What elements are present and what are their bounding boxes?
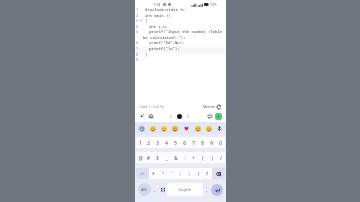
- button[interactable]: /: [216, 152, 225, 163]
- staticText: #: [147, 155, 150, 161]
- button[interactable]: ?: [203, 168, 212, 179]
- staticText: #include<stdio.h>: [145, 7, 186, 12]
- staticText: .: [206, 187, 208, 193]
- staticText: }: [145, 52, 148, 57]
- button[interactable]: Emoji: [205, 125, 212, 132]
- staticText: !: [198, 171, 200, 177]
- button[interactable]: Emoji: [194, 125, 201, 132]
- staticText: -: [184, 155, 186, 161]
- staticText: be calculated):");: [143, 35, 186, 40]
- staticText: 0: [219, 140, 222, 146]
- button[interactable]: Rotate preview: [216, 104, 221, 109]
- staticText: 2: [136, 13, 139, 18]
- button[interactable]: Emoji: [171, 125, 178, 132]
- staticText: 9: [136, 57, 139, 62]
- button[interactable]: (: [198, 152, 207, 163]
- button[interactable]: ': [167, 168, 176, 179]
- staticText: =\<: [140, 172, 145, 176]
- button[interactable]: $: [153, 152, 162, 163]
- button[interactable]: Emoji: [160, 125, 167, 132]
- button[interactable]: ;: [185, 168, 194, 179]
- staticText: 1:14: [153, 2, 161, 7]
- button[interactable]: .: [203, 183, 211, 196]
- button[interactable]: Voice input: [216, 125, 223, 132]
- staticText: int main (): [145, 13, 171, 18]
- staticText: 3: [156, 140, 159, 146]
- staticText: :: [180, 171, 182, 177]
- staticText: ;: [189, 171, 191, 177]
- staticText: int j,n;: [149, 24, 168, 29]
- button[interactable]: English: [167, 183, 203, 196]
- staticText: 1: [136, 7, 139, 12]
- button[interactable]: Previous: [168, 113, 174, 119]
- button[interactable]: Cursor position: [177, 114, 182, 119]
- staticText: @: [138, 155, 143, 161]
- button[interactable]: Backspace: [212, 168, 225, 179]
- staticText: scanf("%d",&n);: [149, 40, 185, 45]
- button[interactable]: ABC: [138, 183, 151, 196]
- staticText: printf("Input the number (Table to: [149, 29, 226, 34]
- staticText: English: [179, 187, 192, 192]
- button[interactable]: 5: [171, 137, 180, 148]
- staticText: ": [162, 171, 164, 177]
- staticText: +: [192, 155, 195, 161]
- staticText: (: [202, 155, 204, 161]
- button[interactable]: Comments: [206, 113, 213, 120]
- staticText: 6: [136, 40, 139, 45]
- button[interactable]: Recent emoji: [138, 125, 145, 132]
- staticText: 6: [183, 140, 186, 146]
- staticText: *: [152, 171, 155, 177]
- staticText: 8: [136, 52, 139, 57]
- staticText: $: [156, 155, 159, 161]
- staticText: 2: [147, 140, 150, 146]
- button[interactable]: ): [207, 152, 216, 163]
- button[interactable]: ,: [151, 183, 159, 196]
- staticText: 7: [192, 140, 195, 146]
- staticText: _: [166, 155, 168, 161]
- button[interactable]: Emoji: [149, 125, 156, 132]
- button[interactable]: +: [189, 152, 198, 163]
- button[interactable]: Enter: [211, 184, 223, 196]
- button[interactable]: Heart emoji: [183, 125, 190, 132]
- staticText: 9: [210, 140, 213, 146]
- button[interactable]: Switch keyboard: [159, 183, 167, 196]
- staticText: ,: [154, 187, 156, 193]
- button[interactable]: 9: [207, 137, 216, 148]
- button[interactable]: !: [194, 168, 203, 179]
- button[interactable]: :: [176, 168, 185, 179]
- staticText: &: [174, 155, 178, 161]
- button[interactable]: 3: [153, 137, 162, 148]
- staticText: 5: [174, 140, 177, 146]
- button[interactable]: -: [180, 152, 189, 163]
- staticText: 4: [136, 24, 139, 29]
- staticText: {: [145, 18, 148, 23]
- button[interactable]: Home: [148, 113, 154, 119]
- button[interactable]: ": [158, 168, 167, 179]
- button[interactable]: 1: [136, 137, 144, 148]
- button[interactable]: 7: [189, 137, 198, 148]
- staticText: ): [211, 155, 213, 161]
- staticText: Line 1 : Col 1x: [140, 104, 164, 109]
- button[interactable]: @: [136, 152, 144, 163]
- button[interactable]: *: [149, 168, 158, 179]
- button[interactable]: &: [171, 152, 180, 163]
- staticText: 7: [136, 46, 139, 51]
- staticText: Mobile: [203, 104, 215, 109]
- staticText: 5: [136, 29, 139, 34]
- button[interactable]: Magic format: [139, 113, 145, 119]
- button[interactable]: 6: [180, 137, 189, 148]
- button[interactable]: #: [144, 152, 153, 163]
- button[interactable]: _: [162, 152, 171, 163]
- staticText: 74%: [210, 2, 217, 7]
- button[interactable]: Run: [215, 113, 222, 120]
- staticText: printf("\n");: [149, 46, 180, 51]
- staticText: ABC: [141, 188, 148, 192]
- button[interactable]: 2: [144, 137, 153, 148]
- button[interactable]: 0: [216, 137, 225, 148]
- staticText: /: [220, 155, 222, 161]
- staticText: 4: [165, 140, 168, 146]
- button[interactable]: Next: [185, 113, 191, 119]
- button[interactable]: =\<: [136, 168, 149, 179]
- button[interactable]: 8: [198, 137, 207, 148]
- button[interactable]: 4: [162, 137, 171, 148]
